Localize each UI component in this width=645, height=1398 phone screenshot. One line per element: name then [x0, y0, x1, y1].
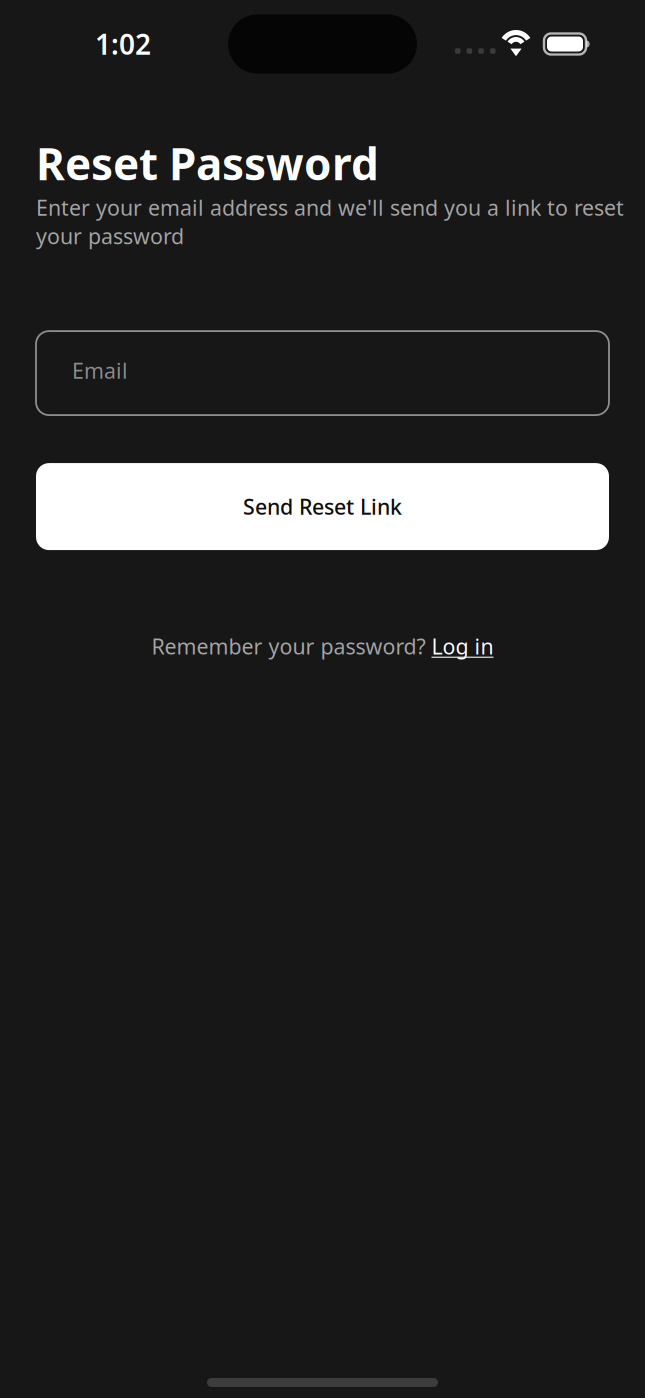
staticText: Remember your password?	[151, 632, 431, 660]
staticText: Email	[72, 356, 128, 385]
staticText: 1:02	[95, 25, 151, 63]
staticText: Reset Password	[36, 134, 379, 192]
button[interactable]: Send Reset Link	[36, 463, 609, 550]
staticText: Log in	[431, 632, 493, 660]
button[interactable]: Log in	[431, 632, 493, 660]
staticText: Enter your email address and we'll send …	[36, 193, 624, 250]
staticText: Send Reset Link	[243, 492, 402, 521]
button[interactable]: Email	[36, 331, 609, 415]
